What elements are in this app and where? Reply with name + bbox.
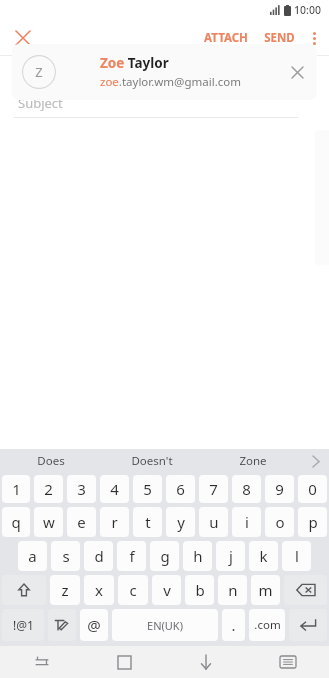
- button[interactable]: v: [152, 575, 181, 605]
- button[interactable]: 4: [100, 475, 129, 503]
- staticText: Doesn't: [131, 453, 173, 469]
- button[interactable]: 7: [199, 475, 228, 503]
- button[interactable]: Shift: [2, 575, 46, 605]
- button[interactable]: q: [2, 507, 30, 537]
- button[interactable]: .com: [249, 609, 285, 641]
- staticText: ATTACH: [204, 30, 248, 46]
- button[interactable]: m: [251, 575, 280, 605]
- button[interactable]: Switch: [0, 646, 83, 678]
- button[interactable]: More options: [301, 25, 327, 51]
- staticText: f: [129, 546, 135, 566]
- button[interactable]: Recents: [83, 646, 165, 678]
- staticText: To: [18, 65, 32, 81]
- staticText: SEND: [264, 30, 295, 46]
- button[interactable]: Close: [8, 23, 38, 53]
- button[interactable]: c: [118, 575, 148, 605]
- button[interactable]: e: [67, 507, 96, 537]
- staticText: j: [229, 546, 233, 566]
- button[interactable]: Does: [0, 449, 101, 473]
- button[interactable]: 2: [34, 475, 63, 503]
- button[interactable]: 6: [166, 475, 195, 503]
- staticText: 5: [143, 479, 152, 499]
- staticText: .: [231, 615, 236, 635]
- button[interactable]: h: [183, 541, 212, 571]
- button[interactable]: Expand recipients: [295, 60, 321, 86]
- staticText: 8: [242, 479, 251, 499]
- button[interactable]: .: [222, 609, 245, 641]
- button[interactable]: d: [84, 541, 113, 571]
- button[interactable]: s: [51, 541, 80, 571]
- button[interactable]: u: [199, 507, 228, 537]
- staticText: 10:00: [294, 3, 321, 17]
- button[interactable]: 1: [2, 475, 30, 503]
- staticText: e: [77, 512, 86, 532]
- staticText: d: [94, 546, 104, 566]
- button[interactable]: a: [18, 541, 47, 571]
- button[interactable]: w: [34, 507, 63, 537]
- button[interactable]: i: [232, 507, 261, 537]
- button[interactable]: x: [84, 575, 114, 605]
- button[interactable]: 8: [232, 475, 261, 503]
- staticText: Subject: [18, 94, 63, 112]
- button[interactable]: t: [133, 507, 162, 537]
- button[interactable]: Remove recipient: [283, 58, 311, 86]
- staticText: a: [28, 546, 37, 566]
- staticText: .com: [254, 617, 281, 633]
- button[interactable]: Backspace: [284, 575, 327, 605]
- button[interactable]: Enter: [289, 609, 327, 641]
- staticText: Z: [35, 63, 43, 81]
- button[interactable]: Doesn't: [101, 449, 202, 473]
- button[interactable]: z: [50, 575, 80, 605]
- button[interactable]: 9: [265, 475, 294, 503]
- button[interactable]: ATTACH: [198, 24, 254, 52]
- staticText: y: [177, 512, 185, 532]
- button[interactable]: n: [218, 575, 247, 605]
- staticText: 3: [77, 479, 86, 499]
- button[interactable]: @: [80, 609, 108, 641]
- staticText: 6: [176, 479, 185, 499]
- staticText: 1: [12, 479, 21, 499]
- button[interactable]: 0: [298, 475, 327, 503]
- button[interactable]: 5: [133, 475, 162, 503]
- button[interactable]: r: [100, 507, 129, 537]
- button[interactable]: f: [117, 541, 146, 571]
- staticText: n: [228, 580, 238, 600]
- staticText: EN(UK): [147, 618, 183, 633]
- staticText: h: [193, 546, 203, 566]
- button[interactable]: o: [265, 507, 294, 537]
- button[interactable]: l: [282, 541, 311, 571]
- staticText: 9: [275, 479, 284, 499]
- staticText: m: [258, 580, 273, 600]
- staticText: w: [43, 512, 55, 532]
- staticText: p: [308, 512, 318, 532]
- button[interactable]: Zone: [202, 449, 303, 473]
- button[interactable]: g: [150, 541, 179, 571]
- button[interactable]: Z: [12, 44, 317, 100]
- staticText: b: [195, 580, 205, 600]
- button[interactable]: y: [166, 507, 195, 537]
- staticText: Zone: [239, 453, 267, 469]
- button[interactable]: !@1: [2, 609, 44, 641]
- button[interactable]: EN(UK): [112, 609, 218, 641]
- button[interactable]: More suggestions: [303, 449, 329, 473]
- button[interactable]: j: [216, 541, 245, 571]
- button[interactable]: p: [298, 507, 327, 537]
- button[interactable]: b: [185, 575, 214, 605]
- button[interactable]: 3: [67, 475, 96, 503]
- staticText: t: [145, 512, 151, 532]
- staticText: z: [61, 580, 69, 600]
- staticText: @: [87, 615, 101, 635]
- staticText: !@1: [13, 617, 34, 633]
- staticText: 4: [110, 479, 119, 499]
- button[interactable]: Handwriting: [48, 609, 76, 641]
- staticText: c: [129, 580, 137, 600]
- button[interactable]: Keyboard settings: [247, 646, 329, 678]
- button[interactable]: SEND: [258, 24, 301, 52]
- staticText: v: [163, 580, 171, 600]
- staticText: x: [95, 580, 103, 600]
- staticText: l: [295, 546, 299, 566]
- button[interactable]: Hide keyboard: [165, 646, 247, 678]
- staticText: s: [62, 546, 70, 566]
- button[interactable]: k: [249, 541, 278, 571]
